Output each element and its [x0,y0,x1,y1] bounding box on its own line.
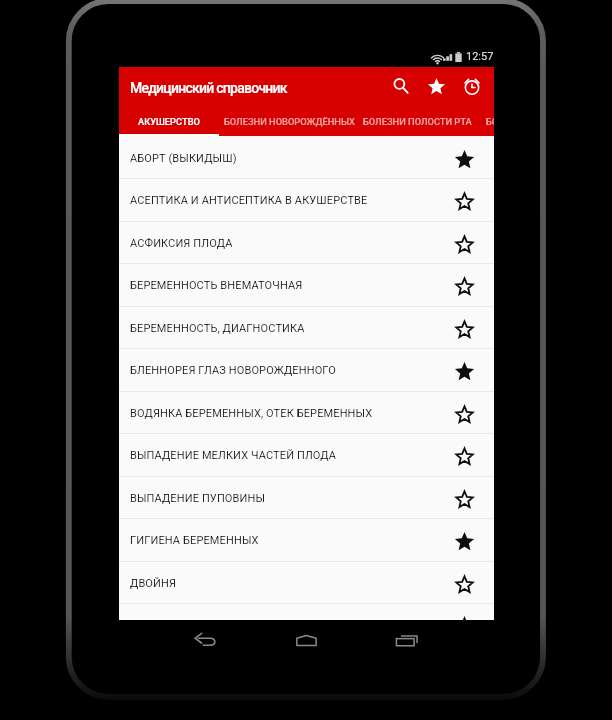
staticText: ВОДЯНКА БЕРЕМЕННЫХ, ОТЕК БЕРЕМЕННЫХ [130,407,435,420]
staticText: АБОРТ (ВЫКИДЫШ) [130,152,435,165]
staticText: Медицинский справочник [130,80,287,96]
button[interactable]: БОЛЕЗНИ ПОЧЕК [475,108,494,136]
staticText: ВЫПАДЕНИЕ МЕЛКИХ ЧАСТЕЙ ПЛОДА [130,449,435,462]
staticText: БОЛЕЗНИ ПОЛОСТИ РТА [363,116,472,127]
button[interactable]: Alarm [454,68,490,104]
button[interactable]: ВОДЯНКА БЕРЕМЕННЫХ, ОТЕК БЕРЕМЕННЫХ [119,392,494,435]
staticText: БЛЕННОРЕЯ ГЛАЗ НОВОРОЖДЕННОГО [130,364,435,377]
button[interactable]: БОЛЕЗНИ ПОЛОСТИ РТА [360,108,475,136]
staticText: АСФИКСИЯ ПЛОДА [130,237,435,250]
button[interactable]: АСФИКСИЯ ПЛОДА [119,222,494,265]
staticText: БЕРЕМЕННОСТЬ ВНЕМАТОЧНАЯ [130,279,435,292]
button[interactable]: АКУШЕРСТВО [119,108,219,136]
button[interactable]: ВЫПАДЕНИЕ ПУПОВИНЫ [119,477,494,520]
button[interactable]: БЛЕННОРЕЯ ГЛАЗ НОВОРОЖДЕННОГО [119,349,494,392]
staticText: АКУШЕРСТВО [138,116,200,127]
staticText: ДВОЙНЯ [130,577,435,590]
staticText: ГИГИЕНА БЕРЕМЕННЫХ [130,534,435,547]
staticText: АСЕПТИКА И АНТИСЕПТИКА В АКУШЕРСТВЕ [130,194,435,207]
button[interactable]: АСЕПТИКА И АНТИСЕПТИКА В АКУШЕРСТВЕ [119,179,494,222]
staticText: ДИАБЕТ БЕРЕМЕННЫХ [130,619,435,632]
button[interactable]: Recents [395,630,417,650]
button[interactable]: Back [194,630,216,650]
button[interactable]: БОЛЕЗНИ НОВОРОЖДЁННЫХ [219,108,360,136]
button[interactable]: ВЫПАДЕНИЕ МЕЛКИХ ЧАСТЕЙ ПЛОДА [119,434,494,477]
button[interactable]: Search [383,68,419,104]
staticText: БОЛЕЗНИ ПОЧЕК [486,116,494,127]
staticText: 12:57 [466,50,494,63]
staticText: БОЛЕЗНИ НОВОРОЖДЁННЫХ [224,116,355,127]
staticText: БЕРЕМЕННОСТЬ, ДИАГНОСТИКА [130,322,435,335]
button[interactable]: ГИГИЕНА БЕРЕМЕННЫХ [119,519,494,562]
button[interactable]: ДВОЙНЯ [119,562,494,605]
button[interactable]: ДИАБЕТ БЕРЕМЕННЫХ [119,604,494,647]
button[interactable]: БЕРЕМЕННОСТЬ, ДИАГНОСТИКА [119,307,494,350]
button[interactable]: Home [295,630,317,650]
button[interactable]: АБОРТ (ВЫКИДЫШ) [119,137,494,180]
button[interactable]: Favorites [418,68,454,104]
button[interactable]: БЕРЕМЕННОСТЬ ВНЕМАТОЧНАЯ [119,264,494,307]
staticText: ВЫПАДЕНИЕ ПУПОВИНЫ [130,492,435,505]
